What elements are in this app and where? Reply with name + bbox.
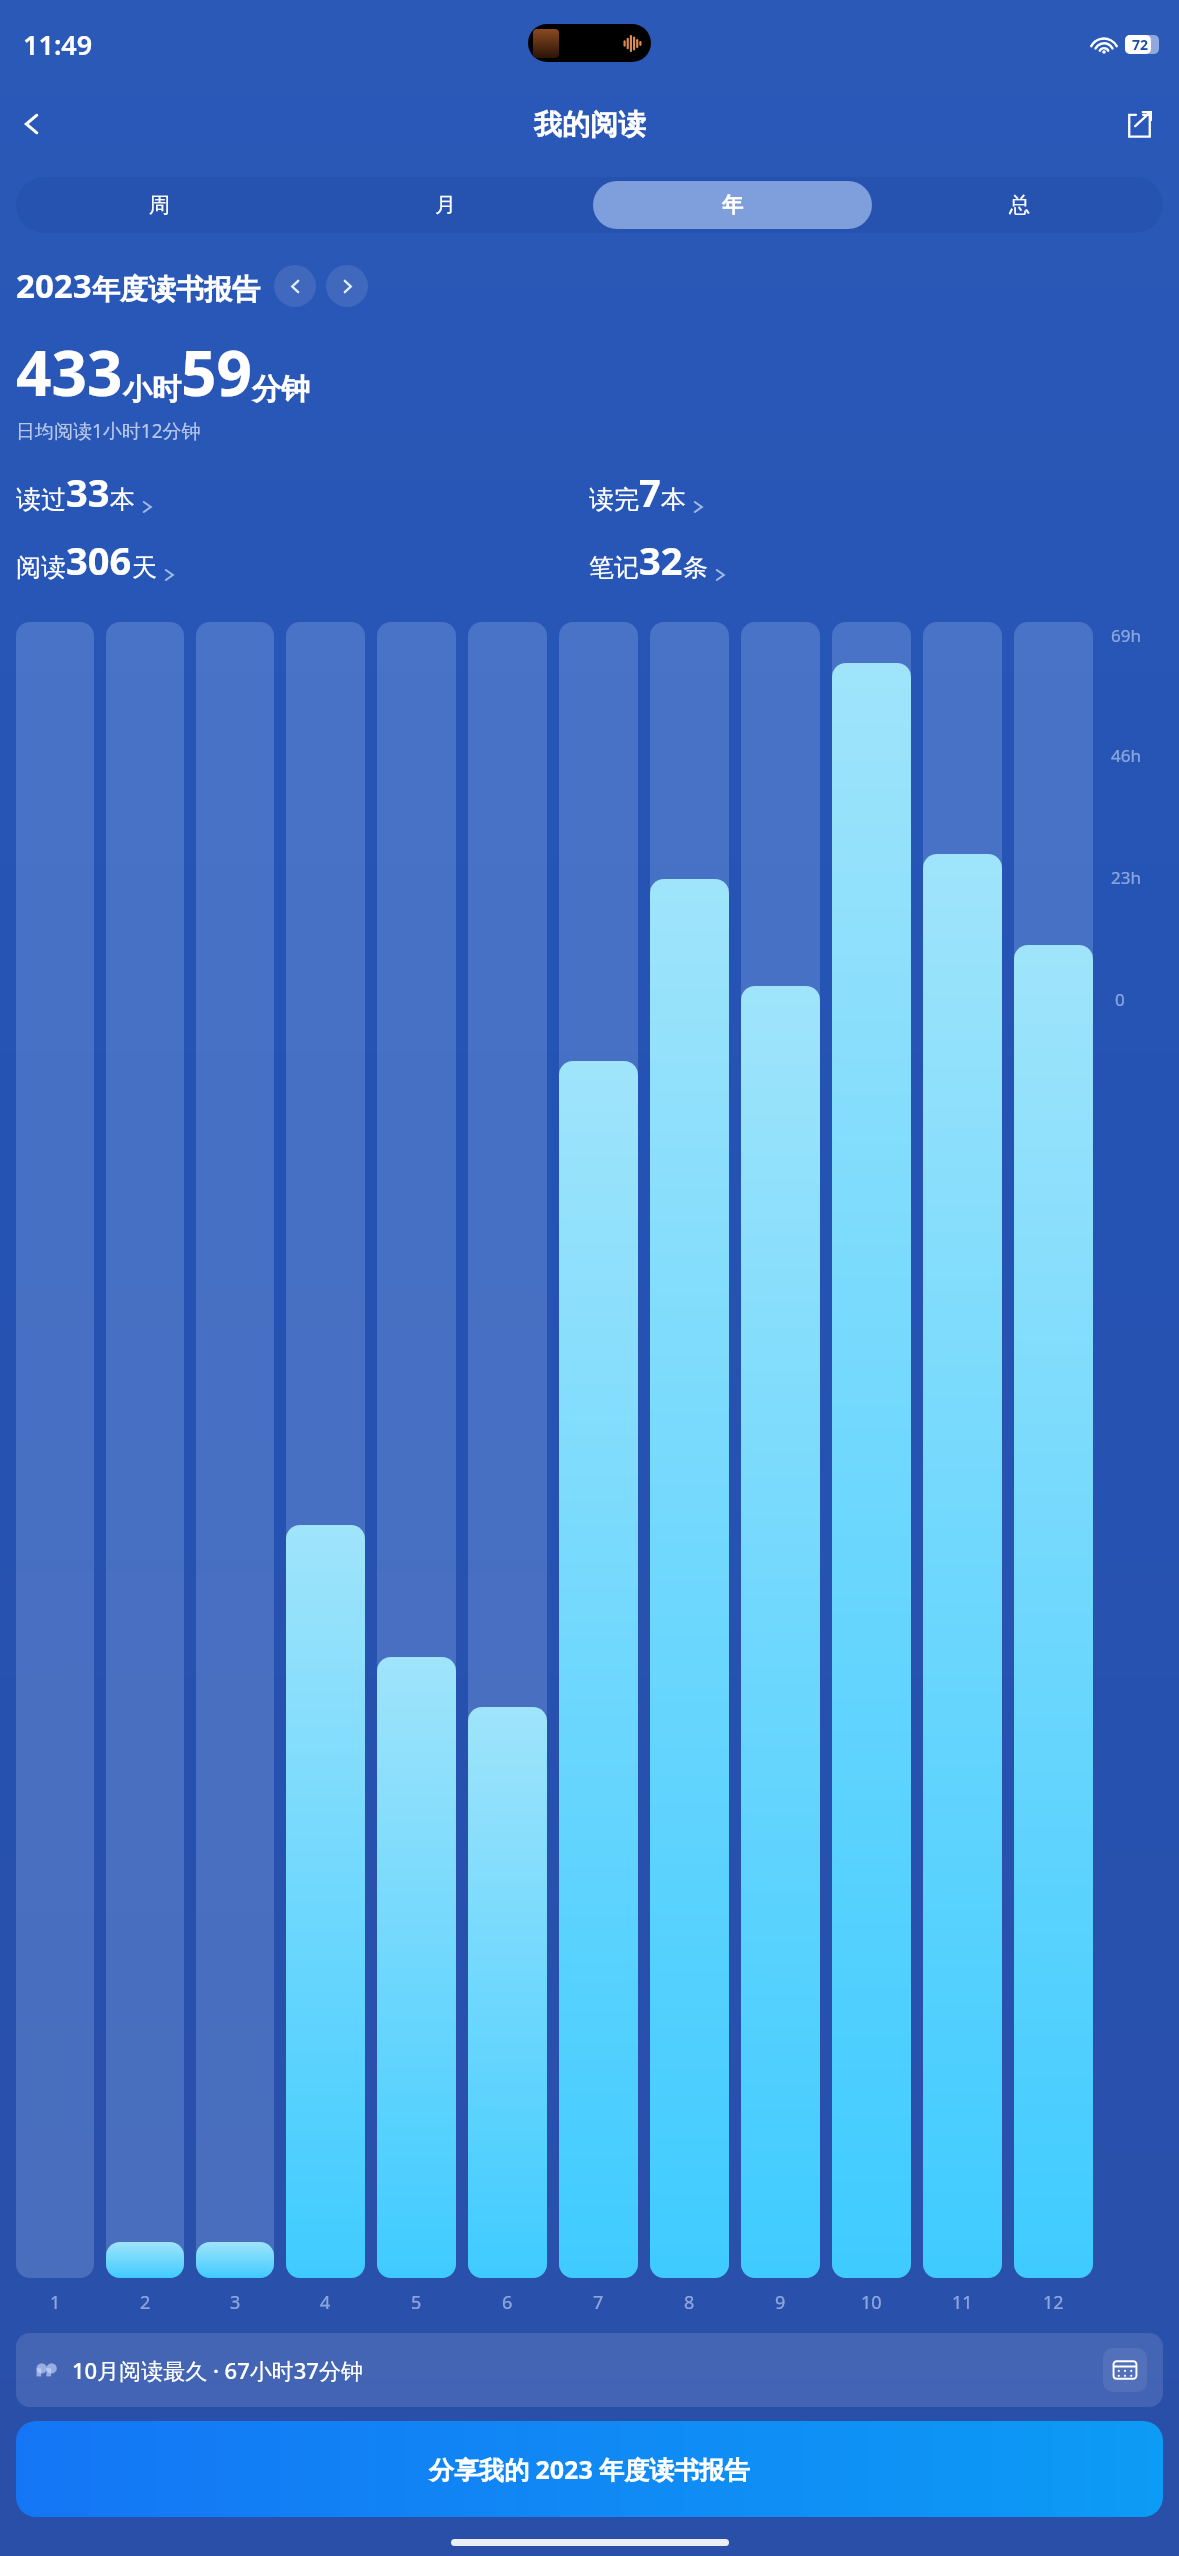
staticText: 306 [66, 534, 132, 586]
staticText: 分钟 [252, 371, 310, 408]
staticText: 2 [140, 2290, 151, 2315]
button[interactable] [196, 622, 274, 2278]
button[interactable]: 笔记 [589, 534, 732, 586]
staticText: 2023 [16, 263, 92, 308]
staticText: 日均阅读1小时12分钟 [16, 418, 201, 444]
staticText: 4 [320, 2290, 331, 2315]
button[interactable]: 分享我的 2023 年度读书报告 [16, 2421, 1163, 2517]
button[interactable] [1014, 622, 1093, 2278]
button[interactable]: Next year [326, 265, 368, 307]
button[interactable] [286, 622, 365, 2278]
button[interactable] [923, 622, 1002, 2278]
staticText: 7 [593, 2290, 604, 2315]
staticText: 23h [1111, 866, 1141, 889]
button[interactable]: Share [1113, 98, 1165, 150]
button[interactable]: Calendar [1103, 2348, 1147, 2392]
staticText: 天 [132, 552, 157, 583]
staticText: 读过 [16, 484, 66, 515]
button[interactable]: 年 [593, 181, 872, 229]
staticText: 33 [66, 466, 110, 518]
staticText: 72 [1132, 35, 1149, 54]
button[interactable]: Back [6, 98, 58, 150]
staticText: 月 [435, 192, 456, 218]
staticText: 我的阅读 [534, 107, 646, 142]
staticText: 总 [1009, 192, 1030, 218]
staticText: 8 [684, 2290, 695, 2315]
staticText: 12 [1043, 2290, 1064, 2315]
staticText: 年度读书报告 [92, 272, 260, 307]
staticText: 69h [1111, 624, 1141, 647]
staticText: 年 [722, 192, 743, 218]
staticText: 6 [502, 2290, 513, 2315]
staticText: 433 [16, 330, 123, 414]
staticText: 10 [861, 2290, 882, 2315]
staticText: 7 [639, 466, 661, 518]
button[interactable]: 月 [306, 181, 585, 229]
button[interactable] [377, 622, 456, 2278]
button[interactable]: 总 [880, 181, 1159, 229]
staticText: 11:49 [23, 26, 93, 63]
staticText: 10月阅读最久 · 67小时37分钟 [72, 2355, 363, 2385]
staticText: 5 [411, 2290, 422, 2315]
button[interactable]: 读过 [16, 466, 159, 518]
staticText: 1 [50, 2290, 61, 2315]
button[interactable]: 读完 [589, 466, 710, 518]
button[interactable] [832, 622, 911, 2278]
staticText: 0 [1115, 988, 1125, 1011]
staticText: 本 [661, 484, 686, 515]
staticText: 3 [230, 2290, 241, 2315]
button[interactable]: 周 [20, 181, 298, 229]
staticText: 9 [775, 2290, 786, 2315]
staticText: 周 [149, 192, 170, 218]
staticText: 本 [110, 484, 135, 515]
staticText: 读完 [589, 484, 639, 515]
staticText: 阅读 [16, 552, 66, 583]
button[interactable]: 10月阅读最久 · 67小时37分钟 [16, 2333, 1163, 2407]
staticText: 分享我的 2023 年度读书报告 [429, 2452, 750, 2486]
button[interactable] [106, 622, 184, 2278]
button[interactable] [468, 622, 547, 2278]
staticText: 32 [639, 534, 683, 586]
staticText: 46h [1111, 744, 1141, 767]
staticText: 59 [181, 330, 252, 414]
staticText: 条 [683, 552, 708, 583]
button[interactable]: 阅读 [16, 534, 181, 586]
staticText: 小时 [123, 371, 181, 408]
button[interactable] [559, 622, 638, 2278]
button[interactable] [741, 622, 820, 2278]
staticText: 11 [952, 2290, 973, 2315]
button[interactable]: Previous year [274, 265, 316, 307]
button[interactable] [650, 622, 729, 2278]
staticText: 笔记 [589, 552, 639, 583]
